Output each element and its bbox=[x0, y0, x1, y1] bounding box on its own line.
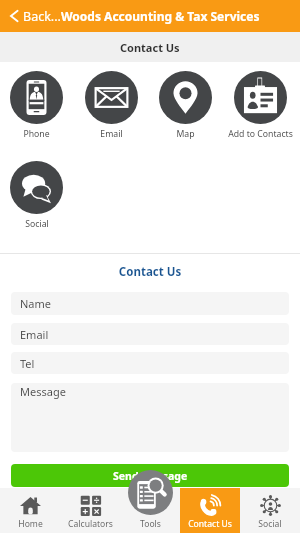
staticText: Email bbox=[20, 327, 49, 342]
staticText: Woods Accounting & Tax Services bbox=[61, 8, 260, 24]
staticText: Contact Us bbox=[120, 40, 180, 55]
button[interactable]: Message bbox=[11, 383, 289, 452]
staticText: Tools bbox=[140, 518, 161, 530]
staticText: Home bbox=[18, 518, 43, 530]
button[interactable]: Tools bbox=[120, 488, 180, 533]
button[interactable]: Email bbox=[11, 323, 289, 345]
staticText: Social bbox=[258, 518, 282, 530]
button[interactable]: Name bbox=[11, 292, 289, 315]
button[interactable]: Email bbox=[74, 71, 149, 140]
button[interactable]: Phone bbox=[0, 71, 74, 140]
button[interactable]: Social bbox=[0, 161, 74, 230]
button[interactable]: Contact Us bbox=[180, 488, 240, 533]
staticText: Social bbox=[25, 218, 49, 230]
staticText: Tel bbox=[20, 356, 35, 371]
staticText: Send Message bbox=[113, 469, 188, 483]
button[interactable]: Map bbox=[148, 71, 223, 140]
button[interactable]: Send Message bbox=[11, 464, 289, 487]
button[interactable]: Home bbox=[0, 488, 60, 533]
button[interactable]: Tel bbox=[11, 352, 289, 374]
staticText: Map bbox=[176, 128, 195, 140]
staticText: Calculators bbox=[68, 518, 113, 530]
button[interactable]: Social bbox=[240, 488, 300, 533]
button[interactable]: Tools bbox=[128, 470, 173, 515]
staticText: Name bbox=[20, 296, 52, 311]
staticText: Contact Us bbox=[188, 518, 232, 530]
staticText: Message bbox=[20, 384, 66, 399]
staticText: Add to Contacts bbox=[228, 128, 293, 140]
button[interactable]: Back bbox=[0, 0, 67, 32]
button[interactable]: Add to Contacts bbox=[223, 71, 298, 140]
button[interactable]: Calculators bbox=[60, 488, 120, 533]
staticText: Back... bbox=[23, 8, 61, 25]
staticText: Phone bbox=[23, 128, 50, 140]
staticText: Email bbox=[100, 128, 123, 140]
staticText: Contact Us bbox=[0, 264, 300, 280]
